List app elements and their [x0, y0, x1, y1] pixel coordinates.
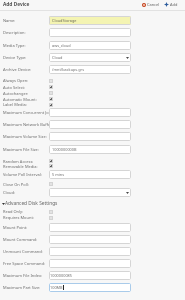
- staticText: Mount Point:: [3, 225, 28, 230]
- staticText: Always Open:: [3, 78, 29, 83]
- staticText: Maximum File Index:: [3, 273, 43, 278]
- staticText: Maximum Concurrent Jobs:: [3, 110, 55, 115]
- staticText: Random Access:: [3, 159, 34, 164]
- button[interactable]: [49, 120, 131, 129]
- button[interactable]: [49, 28, 131, 37]
- staticText: 1000000085: [50, 273, 72, 278]
- staticText: Volume Poll Interval:: [3, 172, 42, 177]
- button[interactable]: Cancel: [141, 2, 161, 7]
- button[interactable]: Unchecked: [49, 216, 53, 220]
- staticText: Device Type:: [3, 55, 27, 60]
- staticText: Add: [170, 2, 178, 7]
- button[interactable]: /mnt/backups.grs: [49, 65, 131, 74]
- staticText: Unmount Command:: [3, 249, 43, 254]
- staticText: Auto Select:: [3, 85, 26, 90]
- staticText: Automatic Mount:: [3, 97, 37, 102]
- staticText: Maximum Network Buffer Size:: [3, 122, 62, 127]
- staticText: aws_cloud: [52, 43, 71, 48]
- button[interactable]: [49, 247, 131, 256]
- staticText: Free Space Command:: [3, 261, 45, 266]
- button[interactable]: Advanced Disk Settings: [2, 200, 58, 207]
- button[interactable]: Add: [163, 2, 179, 7]
- button[interactable]: [49, 108, 131, 117]
- button[interactable]: Checked: [49, 159, 53, 163]
- button[interactable]: 1000000085: [49, 271, 131, 280]
- staticText: Read Only:: [3, 209, 24, 214]
- staticText: 1000000000B: [52, 147, 77, 152]
- button[interactable]: Checked: [49, 164, 53, 168]
- button[interactable]: Checked: [49, 85, 53, 89]
- button[interactable]: 5 mins: [49, 170, 131, 179]
- button[interactable]: CloudStorage: [49, 16, 131, 25]
- button[interactable]: Checked: [49, 97, 53, 101]
- button[interactable]: Unchecked: [49, 210, 53, 214]
- staticText: Maximum Volume Size:: [3, 134, 47, 139]
- button[interactable]: [49, 259, 131, 268]
- staticText: Advanced Disk Settings: [5, 200, 58, 207]
- staticText: Name:: [3, 18, 16, 23]
- staticText: Cancel: [147, 2, 160, 7]
- staticText: Add Device: [3, 1, 30, 8]
- button[interactable]: 100MB: [49, 283, 131, 292]
- button[interactable]: [49, 132, 131, 141]
- staticText: /mnt/backups.grs: [52, 67, 85, 72]
- staticText: 100MB: [50, 285, 63, 290]
- staticText: Media Type:: [3, 43, 26, 48]
- button[interactable]: Checked: [49, 103, 53, 107]
- button[interactable]: [49, 223, 131, 232]
- staticText: Close On Poll:: [3, 182, 29, 187]
- staticText: 5 mins: [52, 172, 65, 177]
- button[interactable]: [49, 235, 131, 244]
- staticText: Maximum Part Size:: [3, 285, 41, 290]
- button[interactable]: Select option: [49, 53, 131, 62]
- staticText: Removable Media:: [3, 164, 38, 169]
- button[interactable]: Unchecked: [49, 79, 53, 83]
- staticText: CloudStorage: [52, 18, 77, 23]
- button[interactable]: 1000000000B: [49, 145, 131, 154]
- staticText: Autochanger:: [3, 91, 29, 96]
- staticText: Description:: [3, 30, 26, 35]
- button[interactable]: Unchecked: [49, 91, 53, 95]
- staticText: Cloud: [52, 55, 63, 60]
- staticText: Maximum File Size:: [3, 147, 39, 152]
- button[interactable]: Select option: [49, 188, 131, 197]
- button[interactable]: aws_cloud: [49, 41, 131, 50]
- staticText: Archive Device:: [3, 67, 32, 72]
- staticText: Requires Mount:: [3, 215, 34, 220]
- button[interactable]: Unchecked: [49, 182, 53, 186]
- staticText: Mount Command:: [3, 237, 38, 242]
- staticText: Cloud:: [3, 190, 15, 195]
- staticText: Label Media:: [3, 102, 27, 107]
